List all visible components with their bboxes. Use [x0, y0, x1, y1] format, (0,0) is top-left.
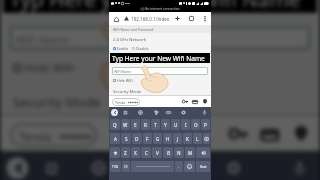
staticText: Security Mode: [113, 89, 142, 95]
button[interactable]: Enter: [203, 133, 210, 144]
staticText: Q: [113, 122, 117, 128]
button[interactable]: Keyboard tool: [137, 109, 144, 116]
staticText: N: [177, 150, 181, 156]
staticText: I: [185, 122, 187, 128]
button[interactable]: L: [193, 133, 202, 144]
staticText: Disable: [136, 46, 149, 51]
button[interactable]: Passwords: [181, 98, 188, 105]
button[interactable]: U: [171, 119, 180, 130]
button[interactable]: Keyboard tool: [201, 109, 208, 116]
staticText: WiFi Name: [16, 32, 72, 47]
button[interactable]: Addresses: [201, 98, 208, 105]
button[interactable]: Keyboard tool: [165, 109, 172, 116]
staticText: Tenda: [115, 100, 126, 105]
staticText: J: [177, 136, 179, 142]
button[interactable]: Tenda: [9, 123, 97, 148]
staticText: E: [134, 122, 137, 128]
button[interactable]: R: [141, 119, 150, 130]
button[interactable]: D: [132, 133, 142, 144]
button[interactable]: New tab: [174, 15, 181, 22]
button[interactable]: Keyboard tool: [180, 109, 187, 116]
staticText: Y: [164, 122, 167, 128]
button[interactable]: Period: [175, 161, 183, 172]
staticText: ?123: [112, 165, 119, 169]
button[interactable]: E: [131, 119, 140, 130]
staticText: 2.4 GHz Network: [113, 37, 147, 43]
staticText: 192.168.0.1/index: [131, 16, 170, 22]
staticText: H: [166, 136, 170, 142]
staticText: U: [174, 122, 178, 128]
button[interactable]: Back: [6, 157, 28, 179]
button[interactable]: Passwords: [226, 123, 248, 145]
button[interactable]: Space: [131, 161, 174, 172]
button[interactable]: Home: [112, 15, 120, 23]
button[interactable]: P: [201, 119, 210, 130]
button[interactable]: Shift: [110, 147, 120, 158]
button[interactable]: M: [185, 147, 195, 158]
button[interactable]: H: [163, 133, 172, 144]
button[interactable]: Keyboard tool: [176, 157, 198, 179]
button[interactable]: Tenda: [112, 98, 140, 106]
button[interactable]: Z: [121, 147, 130, 158]
button[interactable]: K: [183, 133, 192, 144]
button[interactable]: Next: [196, 161, 210, 172]
staticText: Hide WiFi: [117, 78, 133, 83]
staticText: W: [123, 122, 128, 128]
button[interactable]: S: [121, 133, 131, 144]
button[interactable]: A: [110, 133, 120, 144]
button[interactable]: V: [152, 147, 162, 158]
staticText: V: [156, 150, 159, 156]
staticText: Tenda: [19, 129, 53, 145]
button[interactable]: Keyboard tool: [223, 157, 245, 179]
button[interactable]: Keyboard tool: [88, 157, 110, 179]
button[interactable]: B: [163, 147, 173, 158]
staticText: No internet connection: [145, 7, 180, 11]
staticText: .: [178, 164, 180, 170]
button[interactable]: T: [151, 119, 160, 130]
staticText: X: [134, 150, 137, 156]
button[interactable]: F: [143, 133, 152, 144]
button[interactable]: Backspace: [196, 147, 210, 158]
button[interactable]: Emoji: [184, 161, 195, 172]
staticText: P: [204, 122, 207, 128]
button[interactable]: I: [181, 119, 190, 130]
button[interactable]: Addresses: [289, 123, 311, 145]
button[interactable]: More options: [201, 15, 208, 22]
button[interactable]: Keyboard tool: [153, 109, 160, 116]
staticText: Security Mode: [12, 94, 103, 113]
button[interactable]: Language: [122, 161, 130, 172]
button[interactable]: Payment methods: [191, 98, 198, 105]
staticText: Hide WiFi: [25, 60, 75, 76]
button[interactable]: W: [121, 119, 130, 130]
staticText: T: [154, 122, 157, 128]
button[interactable]: Back: [111, 109, 118, 116]
button[interactable]: C: [141, 147, 151, 158]
staticText: Typ Here your New Wifi Name: [9, 0, 301, 13]
staticText: L: [196, 136, 199, 142]
button[interactable]: Keyboard tool: [138, 157, 160, 179]
button[interactable]: O: [191, 119, 200, 130]
button[interactable]: Y: [161, 119, 170, 130]
button[interactable]: Q: [110, 119, 120, 130]
staticText: B: [167, 150, 170, 156]
button[interactable]: Keyboard tool: [122, 109, 129, 116]
button[interactable]: Tabs: [188, 15, 195, 22]
staticText: S: [125, 136, 128, 142]
staticText: K: [186, 136, 189, 142]
button[interactable]: Keyboard tool: [41, 157, 63, 179]
staticText: G: [156, 136, 160, 142]
button[interactable]: G: [153, 133, 162, 144]
staticText: Typ Here your New Wifi Name: [112, 54, 205, 63]
staticText: C: [145, 150, 148, 156]
staticText: Enable: [117, 46, 129, 51]
button[interactable]: X: [131, 147, 140, 158]
staticText: F: [146, 136, 149, 142]
button[interactable]: ?123: [110, 161, 121, 172]
staticText: Next: [200, 165, 207, 169]
button[interactable]: Payment methods: [257, 123, 279, 145]
button[interactable]: J: [173, 133, 182, 144]
button[interactable]: N: [174, 147, 184, 158]
staticText: M: [188, 150, 193, 156]
staticText: WiFi Name and Password: [113, 27, 154, 32]
button[interactable]: Keyboard tool: [289, 157, 311, 179]
